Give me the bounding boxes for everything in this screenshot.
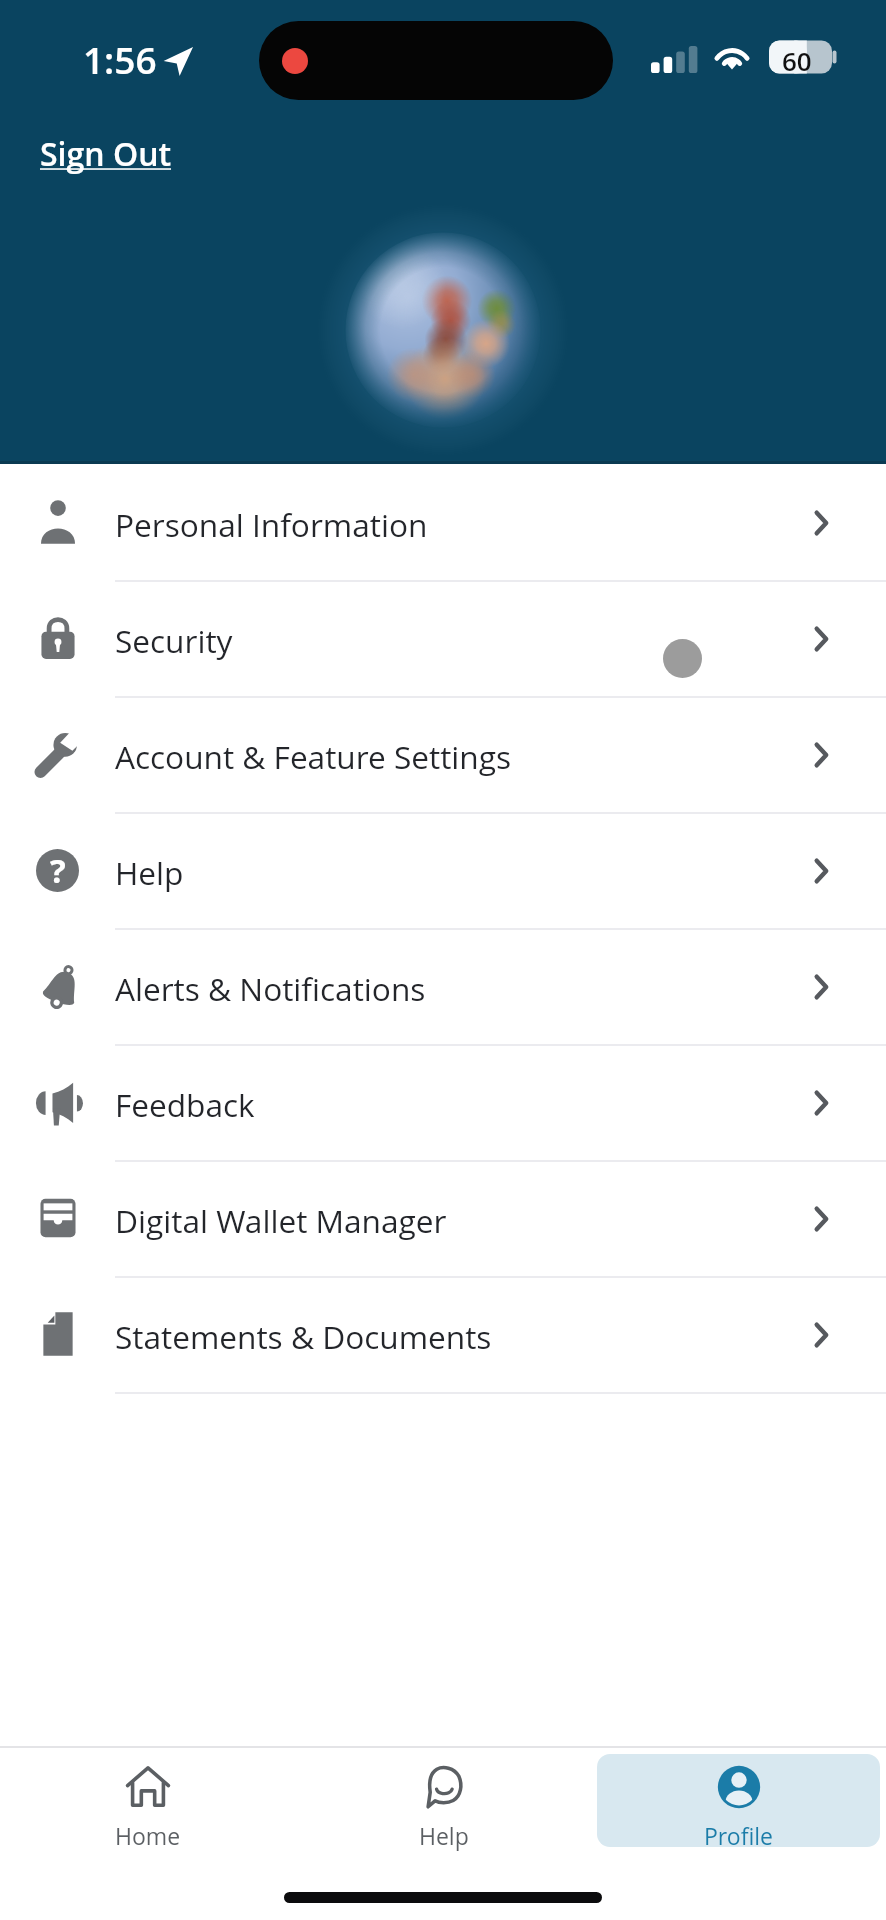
button[interactable]: Alerts & Notifications xyxy=(0,928,886,1044)
staticText: ? xyxy=(50,849,66,891)
button[interactable]: ? xyxy=(0,812,886,928)
button[interactable]: Feedback xyxy=(0,1044,886,1160)
staticText: Help xyxy=(115,851,184,894)
staticText: Help xyxy=(419,1820,469,1851)
button[interactable]: Home xyxy=(0,1748,296,1853)
staticText: 60 xyxy=(782,43,812,77)
staticText: Security xyxy=(115,619,233,662)
button[interactable]: Statements & Documents xyxy=(0,1276,886,1392)
staticText: Sign Out xyxy=(40,132,172,176)
staticText: 1:56 xyxy=(83,34,157,84)
staticText: Account & Feature Settings xyxy=(115,735,512,778)
staticText: Profile xyxy=(704,1820,773,1851)
button[interactable]: Profile xyxy=(591,1748,886,1853)
staticText: Statements & Documents xyxy=(115,1315,492,1358)
staticText: Feedback xyxy=(115,1083,255,1126)
staticText: Alerts & Notifications xyxy=(115,967,426,1010)
staticText: Digital Wallet Manager xyxy=(115,1199,447,1242)
staticText: Home xyxy=(115,1820,181,1851)
button[interactable]: Account & Feature Settings xyxy=(0,696,886,812)
staticText: Personal Information xyxy=(115,503,428,546)
button[interactable]: Personal Information xyxy=(0,464,886,580)
button[interactable]: Digital Wallet Manager xyxy=(0,1160,886,1276)
button[interactable]: Help xyxy=(296,1748,591,1853)
button[interactable]: Security xyxy=(0,580,886,696)
button[interactable]: Sign Out xyxy=(36,126,176,182)
